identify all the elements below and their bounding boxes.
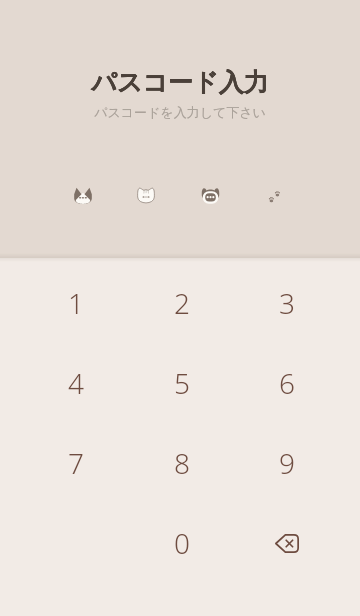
staticText: 2	[174, 284, 190, 322]
button[interactable]: 4	[23, 343, 129, 423]
staticText: 1	[68, 284, 84, 322]
button[interactable]: 1	[23, 263, 129, 343]
staticText: 8	[174, 444, 190, 482]
staticText: パスコード入力	[91, 67, 269, 98]
staticText: パスコード入力	[91, 67, 269, 98]
staticText: 0	[174, 524, 190, 562]
button[interactable]: 2	[129, 263, 234, 343]
staticText: 5	[174, 364, 190, 402]
staticText: パスコードを入力して下さい	[94, 104, 266, 120]
button[interactable]: 5	[129, 343, 234, 423]
staticText: パスコード入力	[91, 67, 269, 98]
button[interactable]: Delete	[234, 503, 339, 583]
staticText: 3	[279, 284, 295, 322]
button[interactable]: 3	[234, 263, 339, 343]
staticText: 9	[279, 444, 295, 482]
staticText: 4	[68, 364, 84, 402]
button[interactable]: 9	[234, 423, 339, 503]
button[interactable]: 8	[129, 423, 234, 503]
button[interactable]: 0	[129, 503, 234, 583]
button[interactable]: 7	[23, 423, 129, 503]
button[interactable]: 6	[234, 343, 339, 423]
staticText: 6	[279, 364, 295, 402]
staticText: 7	[68, 444, 84, 482]
